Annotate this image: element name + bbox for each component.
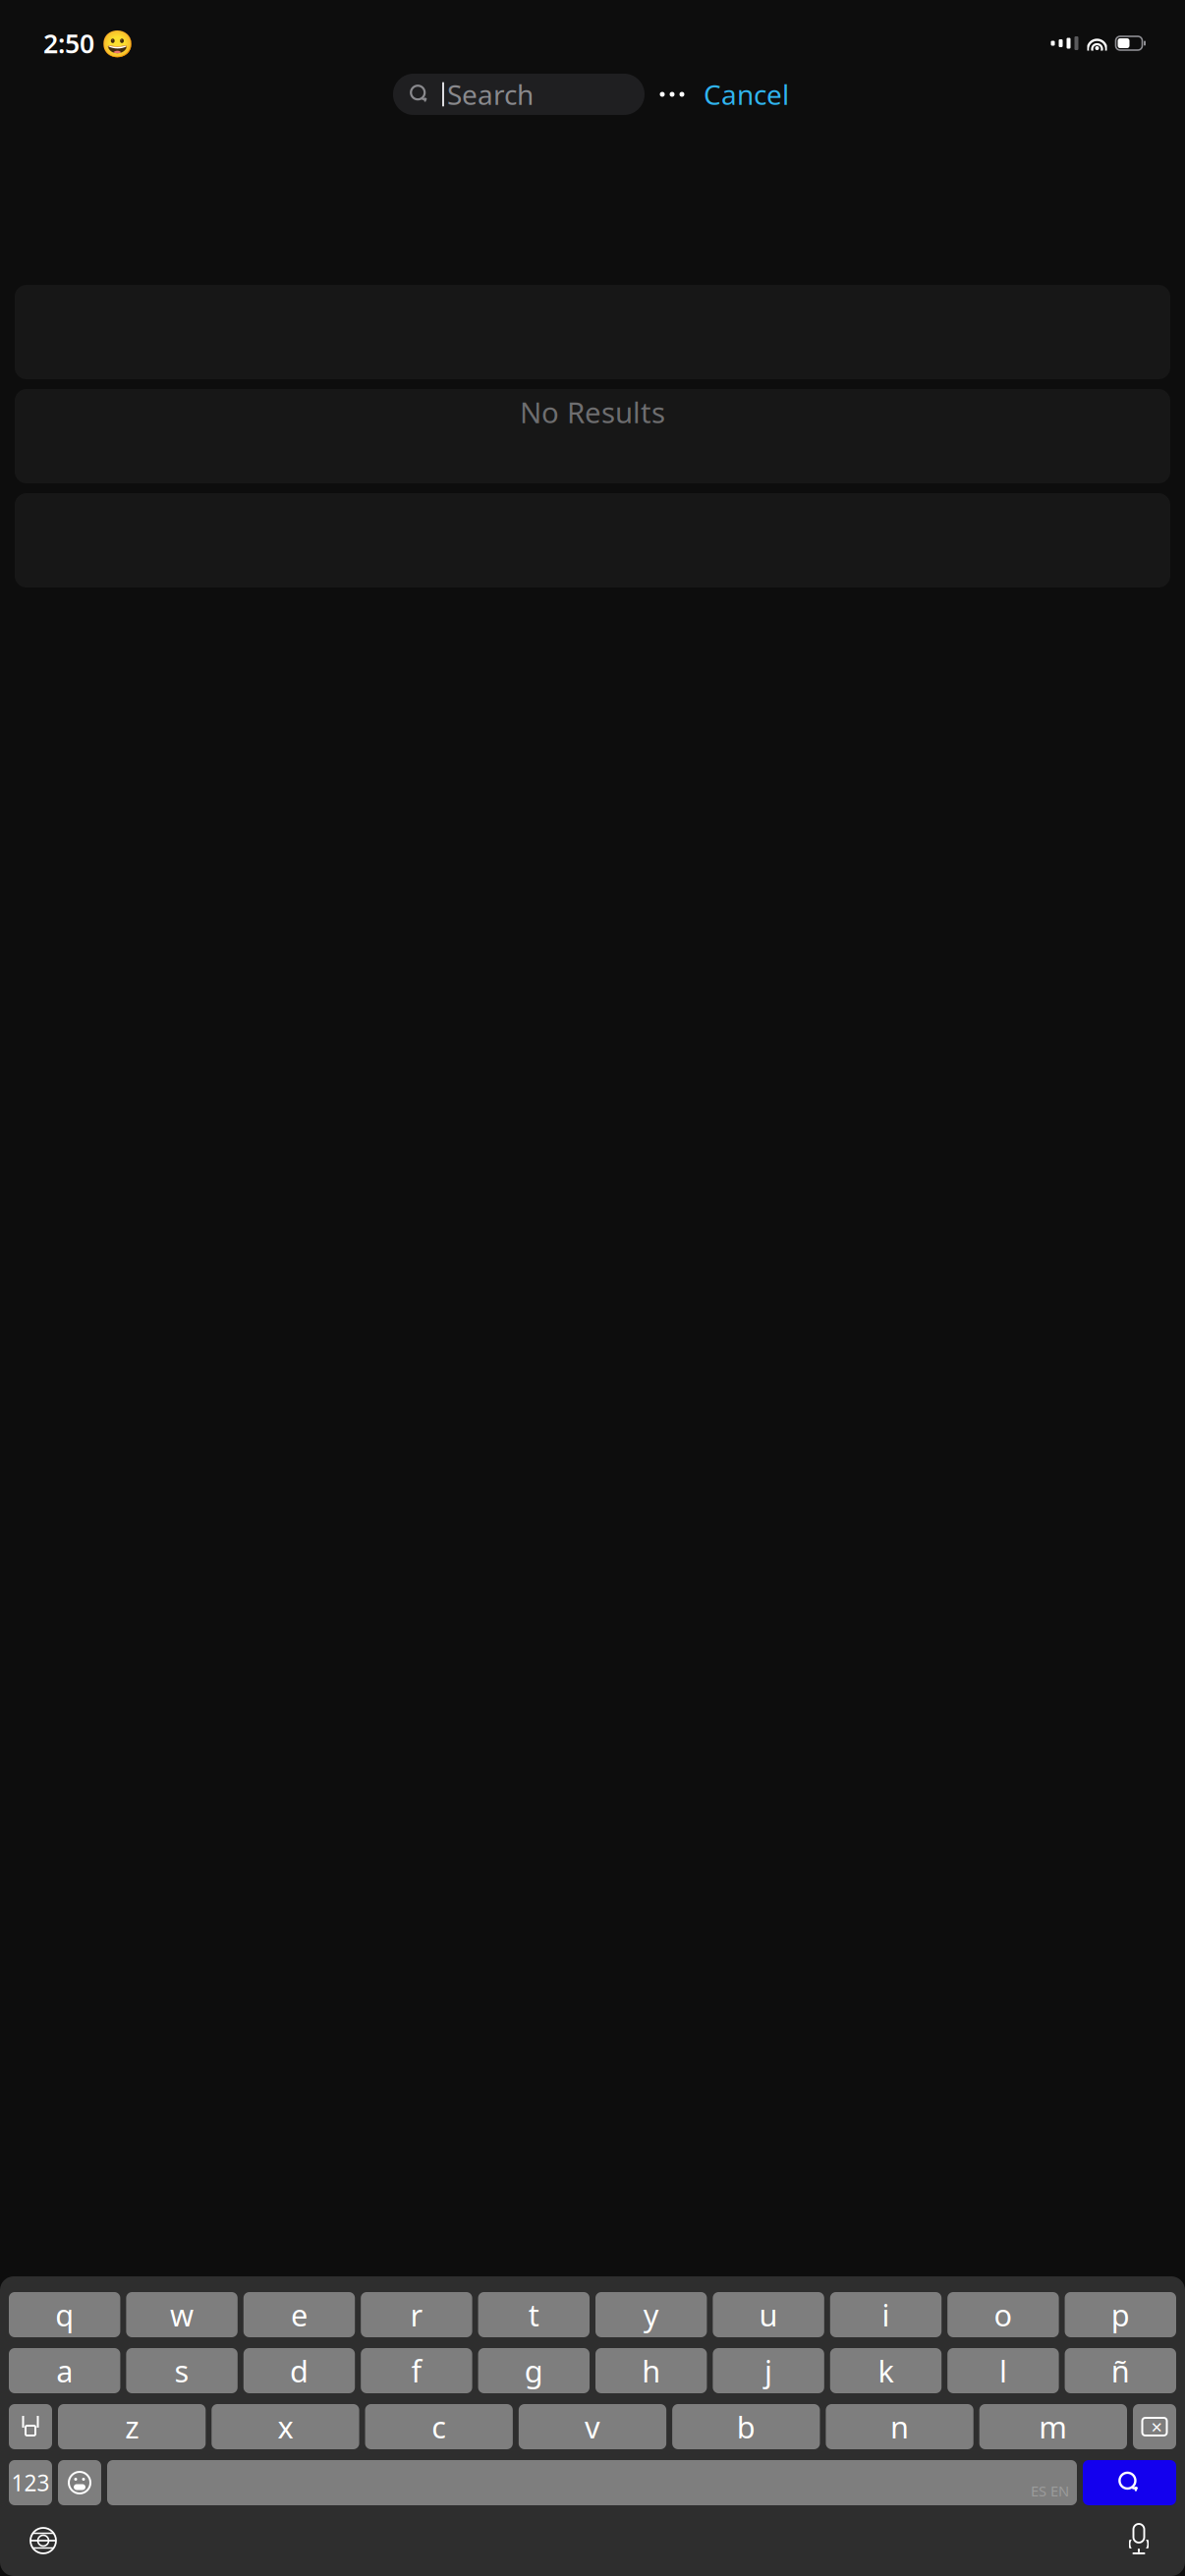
button[interactable]: s <box>126 2348 238 2393</box>
staticText: o <box>994 2295 1012 2335</box>
button[interactable]: f <box>361 2348 472 2393</box>
staticText: ES EN <box>1031 2481 1069 2500</box>
button[interactable]: l <box>947 2348 1059 2393</box>
staticText: 2:50 😀 <box>43 26 134 61</box>
staticText: k <box>878 2351 894 2391</box>
staticText: z <box>125 2407 139 2447</box>
staticText: s <box>175 2351 189 2391</box>
button[interactable]: Next keyboard <box>17 2514 70 2567</box>
button[interactable]: d <box>243 2348 355 2393</box>
button[interactable]: i <box>830 2292 942 2337</box>
button[interactable]: p <box>1065 2292 1176 2337</box>
button[interactable]: t <box>478 2292 590 2337</box>
button[interactable]: x <box>212 2404 359 2449</box>
staticText: No Results <box>520 393 665 431</box>
staticText: x <box>277 2407 293 2447</box>
staticText: ñ <box>1111 2351 1130 2391</box>
button[interactable]: More <box>645 74 700 115</box>
button[interactable]: n <box>826 2404 973 2449</box>
staticText: f <box>411 2351 422 2391</box>
button[interactable]: o <box>947 2292 1059 2337</box>
button[interactable]: e <box>243 2292 355 2337</box>
button[interactable]: v <box>519 2404 666 2449</box>
staticText: m <box>1039 2407 1067 2447</box>
staticText: a <box>56 2351 73 2391</box>
staticText: × <box>1151 2414 1162 2440</box>
button[interactable]: g <box>478 2348 590 2393</box>
button[interactable]: Emoji <box>58 2460 101 2505</box>
button[interactable]: Shift <box>9 2404 52 2449</box>
staticText: p <box>1111 2295 1130 2335</box>
button[interactable]: 123 <box>9 2460 52 2505</box>
staticText: r <box>410 2295 423 2335</box>
button[interactable]: r <box>361 2292 472 2337</box>
button[interactable]: Search <box>1083 2460 1176 2505</box>
staticText: g <box>525 2351 543 2391</box>
button[interactable]: h <box>595 2348 707 2393</box>
button[interactable]: Delete <box>1133 2404 1176 2449</box>
staticText: u <box>759 2295 778 2335</box>
staticText: w <box>170 2295 194 2335</box>
staticText: h <box>642 2351 660 2391</box>
button[interactable]: w <box>126 2292 238 2337</box>
staticText: j <box>765 2351 772 2391</box>
button[interactable]: b <box>672 2404 820 2449</box>
button[interactable]: q <box>9 2292 120 2337</box>
button[interactable]: j <box>713 2348 824 2393</box>
button[interactable]: m <box>979 2404 1127 2449</box>
staticText: q <box>55 2295 74 2335</box>
staticText: e <box>291 2295 308 2335</box>
button[interactable]: z <box>58 2404 206 2449</box>
button[interactable]: ñ <box>1065 2348 1176 2393</box>
button[interactable]: u <box>713 2292 824 2337</box>
staticText: l <box>999 2351 1007 2391</box>
staticText: b <box>737 2407 755 2447</box>
staticText: d <box>290 2351 309 2391</box>
button[interactable]: Space <box>107 2460 1077 2505</box>
button[interactable]: k <box>830 2348 942 2393</box>
button[interactable]: a <box>9 2348 120 2393</box>
button[interactable]: Cancel <box>700 74 793 115</box>
button[interactable]: y <box>595 2292 707 2337</box>
staticText: n <box>890 2407 909 2447</box>
staticText: 123 <box>11 2468 50 2497</box>
button[interactable]: c <box>365 2404 513 2449</box>
button[interactable]: Search <box>393 74 645 115</box>
staticText: t <box>528 2295 539 2335</box>
staticText: v <box>585 2407 600 2447</box>
staticText: y <box>643 2295 659 2335</box>
staticText: i <box>882 2295 890 2335</box>
button[interactable]: Dictation <box>1112 2514 1165 2567</box>
staticText: c <box>432 2407 446 2447</box>
staticText: Cancel <box>704 76 789 113</box>
staticText: Search <box>447 76 534 113</box>
